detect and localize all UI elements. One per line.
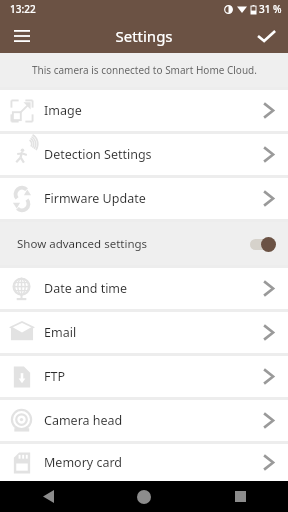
staticText: Show advanced settings — [17, 236, 248, 252]
button[interactable]: Firmware Update — [0, 178, 288, 219]
button[interactable]: Detection Settings — [0, 134, 288, 175]
staticText: Settings — [115, 26, 173, 46]
staticText: 31 % — [259, 2, 282, 16]
staticText: FTP — [44, 368, 263, 385]
button[interactable]: Home — [124, 481, 164, 512]
button[interactable]: Recents — [220, 481, 260, 512]
staticText: This camera is connected to Smart Home C… — [32, 63, 257, 77]
button[interactable]: Date and time — [0, 268, 288, 309]
button[interactable]: Image — [0, 90, 288, 131]
button[interactable]: Memory card — [0, 444, 288, 481]
button[interactable]: Show advanced settings — [0, 222, 288, 265]
staticText: Date and time — [44, 280, 263, 297]
button[interactable]: Menu — [6, 20, 38, 52]
button[interactable]: Back — [28, 481, 68, 512]
button[interactable]: FTP — [0, 356, 288, 397]
staticText: Memory card — [44, 454, 263, 471]
staticText: 13:22 — [10, 2, 36, 16]
staticText: Detection Settings — [44, 146, 263, 163]
staticText: Email — [44, 324, 263, 341]
button[interactable]: Camera head — [0, 400, 288, 441]
button[interactable]: Confirm — [250, 20, 282, 52]
button[interactable]: Email — [0, 312, 288, 353]
staticText: Camera head — [44, 412, 263, 429]
staticText: Image — [44, 102, 263, 119]
staticText: Firmware Update — [44, 190, 263, 207]
